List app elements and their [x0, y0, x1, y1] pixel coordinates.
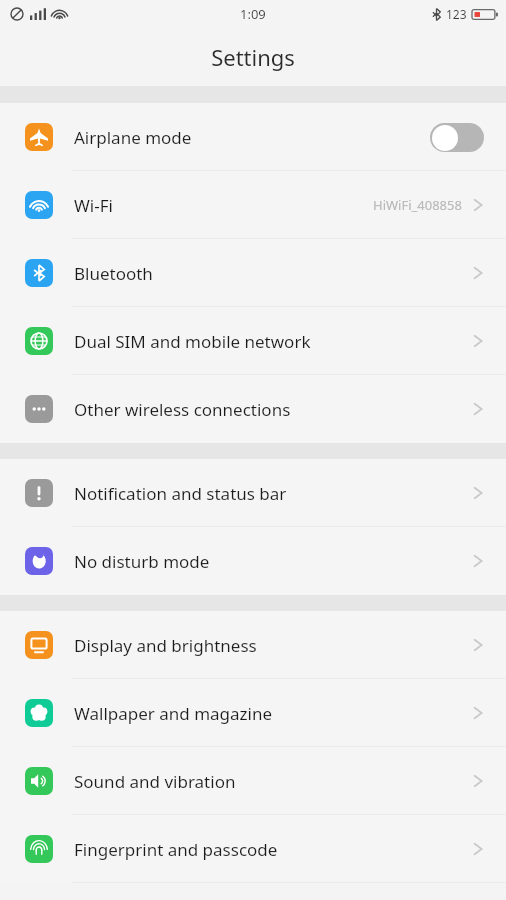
staticText: Bluetooth — [74, 262, 153, 285]
other: Open — [472, 331, 484, 351]
staticText: HiWiFi_408858 — [373, 196, 462, 214]
staticText: Airplane mode — [74, 126, 192, 149]
staticText: Sound and vibration — [74, 770, 236, 793]
staticText: Wi-Fi — [74, 194, 113, 217]
staticText: 1:09 — [240, 5, 266, 23]
button[interactable]: Fingerprint and passcode — [0, 815, 506, 883]
other: Open — [472, 771, 484, 791]
other: Open — [472, 703, 484, 723]
staticText: Dual SIM and mobile network — [74, 330, 311, 353]
button[interactable]: Airplane mode toggle — [430, 123, 484, 152]
button[interactable]: No disturb mode — [0, 527, 506, 595]
staticText: Settings — [211, 42, 295, 72]
button[interactable]: Dual SIM and mobile network — [0, 307, 506, 375]
button[interactable]: Wi-Fi — [0, 171, 506, 239]
button[interactable]: Sound and vibration — [0, 747, 506, 815]
other: Open — [472, 195, 484, 215]
staticText: 123 — [446, 6, 467, 22]
staticText: No disturb mode — [74, 550, 210, 573]
other: Open — [472, 839, 484, 859]
other: Open — [472, 399, 484, 419]
other: Open — [472, 551, 484, 571]
button[interactable]: Wallpaper and magazine — [0, 679, 506, 747]
staticText: Fingerprint and passcode — [74, 838, 278, 861]
other: Open — [472, 635, 484, 655]
button[interactable]: Display and brightness — [0, 611, 506, 679]
staticText: Wallpaper and magazine — [74, 702, 273, 725]
staticText: Display and brightness — [74, 634, 257, 657]
other: Open — [472, 263, 484, 283]
button[interactable]: Bluetooth — [0, 239, 506, 307]
button[interactable]: Notification and status bar — [0, 459, 506, 527]
staticText: Other wireless connections — [74, 398, 291, 421]
button[interactable]: Other wireless connections — [0, 375, 506, 443]
button[interactable]: Airplane mode — [0, 103, 506, 171]
other: Open — [472, 483, 484, 503]
staticText: Notification and status bar — [74, 482, 287, 505]
